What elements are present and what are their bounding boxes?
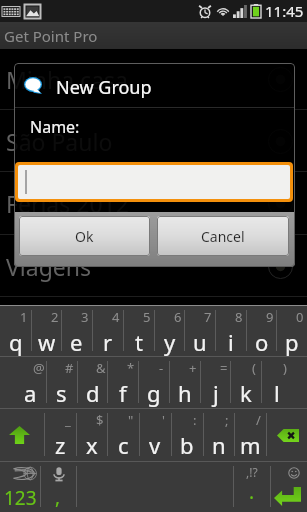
staticText: # [65, 359, 74, 377]
staticText: k [240, 378, 252, 408]
button[interactable]: Space [77, 461, 233, 512]
staticText: $ [96, 411, 104, 429]
staticText: * [127, 359, 135, 377]
button[interactable]: Backspace [266, 408, 307, 461]
staticText: São Paulo [6, 126, 113, 157]
button[interactable]: Cancel [157, 216, 289, 256]
button[interactable]: ' [139, 408, 171, 461]
staticText: 8 [235, 308, 243, 326]
button[interactable]: 4 [92, 305, 123, 356]
staticText: Férias 2012 [6, 188, 129, 219]
staticText: m [240, 430, 261, 460]
button[interactable]: & [77, 356, 108, 408]
staticText: Viagens [6, 251, 91, 282]
staticText: @ [33, 359, 45, 377]
staticText: h [178, 378, 192, 408]
staticText: & [96, 359, 106, 377]
button[interactable]: # [46, 356, 77, 408]
staticText: " [128, 411, 134, 429]
button[interactable]: São Paulo [0, 110, 307, 172]
staticText: + [189, 359, 197, 377]
button[interactable]: ( [230, 356, 261, 408]
button[interactable]: 2 [31, 305, 62, 356]
button[interactable]: Férias 2012 [0, 172, 307, 235]
button[interactable]: _ [44, 408, 76, 461]
staticText: 2 [51, 308, 59, 326]
staticText: ' [162, 411, 165, 429]
button[interactable]: 123 [0, 461, 40, 512]
staticText: e [70, 327, 83, 357]
button[interactable]: ; [203, 408, 235, 461]
button[interactable]: / [234, 408, 266, 461]
button[interactable]: 1 [0, 305, 31, 356]
button[interactable]: 9 [246, 305, 277, 356]
button[interactable]: $ [76, 408, 108, 461]
button[interactable]: + [169, 356, 200, 408]
button[interactable]: Shift [0, 408, 44, 461]
button[interactable]: 3 [61, 305, 92, 356]
staticText: Ok [75, 227, 94, 246]
staticText: - [159, 359, 164, 377]
button[interactable]: = [200, 356, 231, 408]
staticText: ; [225, 411, 229, 429]
staticText: 1 [20, 308, 28, 326]
staticText: 11:45 [265, 1, 304, 21]
staticText: n [212, 430, 226, 460]
button[interactable]: * [107, 356, 138, 408]
button[interactable]: : [171, 408, 203, 461]
button[interactable]: Enter [271, 461, 307, 512]
staticText: c [118, 430, 129, 460]
button[interactable]: - [138, 356, 169, 408]
staticText: Get Point Pro [4, 26, 98, 46]
staticText: 3 [81, 308, 89, 326]
staticText: / [256, 411, 261, 429]
staticText: j [213, 378, 219, 408]
staticText: ) [283, 359, 287, 377]
staticText: y [164, 327, 176, 357]
button[interactable] [18, 165, 290, 199]
button[interactable]: 6 [154, 305, 185, 356]
button[interactable]: ) [261, 356, 292, 408]
button[interactable]: 5 [123, 305, 154, 356]
button[interactable]: Minha casa [0, 48, 307, 110]
staticText: 5 [143, 308, 151, 326]
button[interactable]: Viagens [0, 235, 307, 297]
button[interactable]: , [41, 461, 76, 512]
button[interactable]: " [107, 408, 139, 461]
button[interactable]: 8 [215, 305, 246, 356]
button[interactable]: ,!? [234, 461, 270, 512]
staticText: a [24, 378, 37, 408]
staticText: Minha casa [6, 64, 128, 95]
staticText: l [274, 378, 280, 408]
staticText: z [55, 430, 66, 460]
button[interactable]: Ok [19, 216, 150, 256]
staticText: ( [252, 359, 256, 377]
staticText: x [86, 430, 98, 460]
staticText: Name: [30, 116, 80, 138]
staticText: q [9, 327, 23, 357]
staticText: New Group [56, 75, 152, 100]
staticText: , [55, 484, 61, 510]
button[interactable]: 7 [184, 305, 215, 356]
staticText: r [103, 327, 113, 357]
staticText: b [180, 430, 194, 460]
staticText: = [220, 359, 228, 377]
staticText: . [249, 479, 255, 505]
staticText: : [193, 411, 197, 429]
staticText: p [285, 327, 299, 357]
button[interactable]: @ [15, 356, 46, 408]
staticText: o [255, 327, 269, 357]
staticText: 4 [112, 308, 120, 326]
staticText: _ [65, 411, 71, 429]
staticText: 0 [296, 308, 304, 326]
staticText: g [147, 378, 161, 408]
staticText: Cancel [201, 227, 245, 246]
staticText: 7 [204, 308, 212, 326]
staticText: t [135, 327, 143, 357]
button[interactable]: 0 [276, 305, 307, 356]
staticText: i [228, 327, 234, 357]
staticText: 9 [266, 308, 274, 326]
staticText: 123 [4, 485, 37, 511]
staticText: s [56, 378, 67, 408]
staticText: 6 [174, 308, 182, 326]
